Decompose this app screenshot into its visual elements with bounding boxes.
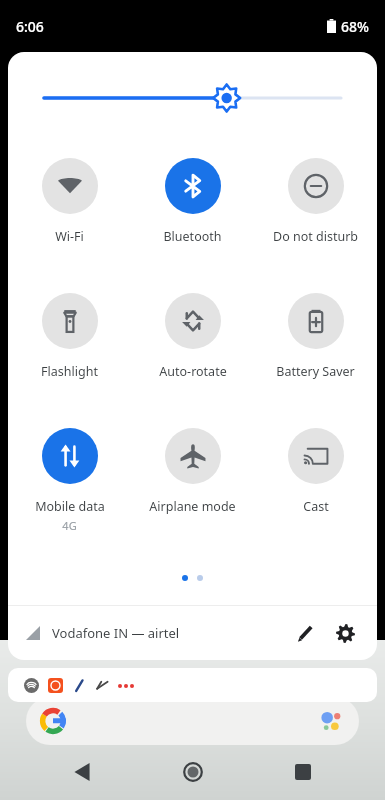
staticText: Battery Saver xyxy=(276,363,355,380)
staticText: Flashlight xyxy=(41,363,98,380)
staticText: 68% xyxy=(341,17,369,36)
staticText: Do not disturb xyxy=(273,228,358,245)
staticText: 4G xyxy=(62,518,77,533)
staticText: Bluetooth xyxy=(163,228,222,245)
staticText: Wi-Fi xyxy=(55,228,84,245)
button[interactable]: Home xyxy=(165,744,221,800)
button[interactable]: Notifications xyxy=(8,668,377,702)
button[interactable]: Recent apps xyxy=(275,744,331,800)
button[interactable]: Back xyxy=(54,744,110,800)
button[interactable]: Wi-Fi xyxy=(8,144,131,279)
button[interactable]: Mobile data xyxy=(8,414,131,549)
button[interactable]: Edit tiles xyxy=(285,613,325,653)
button[interactable]: Cast xyxy=(254,414,377,549)
button[interactable]: Brightness xyxy=(8,52,377,144)
staticText: Mobile data xyxy=(35,498,105,515)
button[interactable]: Do not disturb xyxy=(254,144,377,279)
staticText: Vodafone IN — airtel xyxy=(52,624,180,642)
staticText: Auto-rotate xyxy=(159,363,227,380)
staticText: Airplane mode xyxy=(149,498,236,515)
button[interactable]: Bluetooth xyxy=(131,144,254,279)
button[interactable]: Auto-rotate xyxy=(131,279,254,414)
button[interactable]: Battery Saver xyxy=(254,279,377,414)
staticText: Cast xyxy=(303,498,329,515)
button[interactable]: Flashlight xyxy=(8,279,131,414)
button[interactable]: Settings xyxy=(325,613,365,653)
button[interactable]: Airplane mode xyxy=(131,414,254,549)
staticText: 6:06 xyxy=(16,17,44,36)
